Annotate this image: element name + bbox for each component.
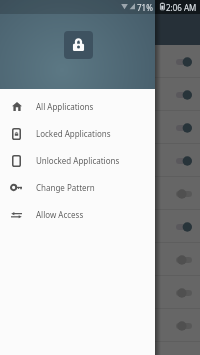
button[interactable]: App lock bbox=[64, 31, 93, 59]
button[interactable]: All Applications bbox=[0, 93, 155, 120]
staticText: Change Pattern bbox=[36, 182, 95, 193]
button[interactable]: Allow Access bbox=[0, 201, 155, 228]
staticText: All Applications bbox=[36, 101, 94, 112]
staticText: Unlocked Applications bbox=[36, 155, 120, 166]
staticText: Application bbox=[40, 56, 83, 67]
staticText: Locked Applications bbox=[36, 128, 111, 139]
button[interactable]: Change Pattern bbox=[0, 174, 155, 201]
staticText: Allow Access bbox=[36, 209, 84, 220]
button[interactable]: Locked Applications bbox=[0, 120, 155, 147]
button[interactable]: Application bbox=[0, 177, 200, 210]
button[interactable]: Application bbox=[0, 276, 200, 309]
staticText: Application bbox=[40, 155, 83, 166]
staticText: Application bbox=[40, 122, 83, 133]
staticText: Application bbox=[40, 188, 83, 199]
button[interactable]: Application bbox=[0, 78, 200, 111]
button[interactable]: Application bbox=[0, 144, 200, 177]
staticText: 71% bbox=[137, 2, 153, 13]
button[interactable]: Application bbox=[0, 243, 200, 276]
button[interactable]: Application bbox=[0, 45, 200, 78]
button[interactable]: Unlocked Applications bbox=[0, 147, 155, 174]
button[interactable]: Application bbox=[0, 111, 200, 144]
button[interactable]: Application bbox=[0, 309, 200, 342]
staticText: 2:06 AM bbox=[166, 2, 197, 13]
button[interactable]: Application bbox=[0, 210, 200, 243]
